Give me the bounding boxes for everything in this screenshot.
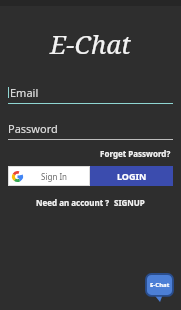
staticText: E-Chat (150, 281, 170, 289)
staticText: Need an account ? (36, 197, 110, 208)
button[interactable]: E-Chat (146, 274, 173, 302)
button[interactable]: Forget Password? (98, 146, 173, 161)
button[interactable]: Password (8, 121, 173, 140)
staticText: SIGNUP (114, 197, 145, 208)
button[interactable]: LOGIN (90, 166, 173, 186)
button[interactable]: Sign In (8, 166, 90, 186)
staticText: Password (8, 121, 58, 136)
button[interactable]: Email (8, 85, 173, 104)
staticText: Email (10, 85, 39, 100)
staticText: E-Chat (0, 26, 181, 61)
staticText: Sign In (41, 171, 68, 182)
staticText: LOGIN (117, 170, 147, 182)
button[interactable]: SIGNUP (114, 197, 145, 208)
staticText: Forget Password? (100, 148, 171, 159)
